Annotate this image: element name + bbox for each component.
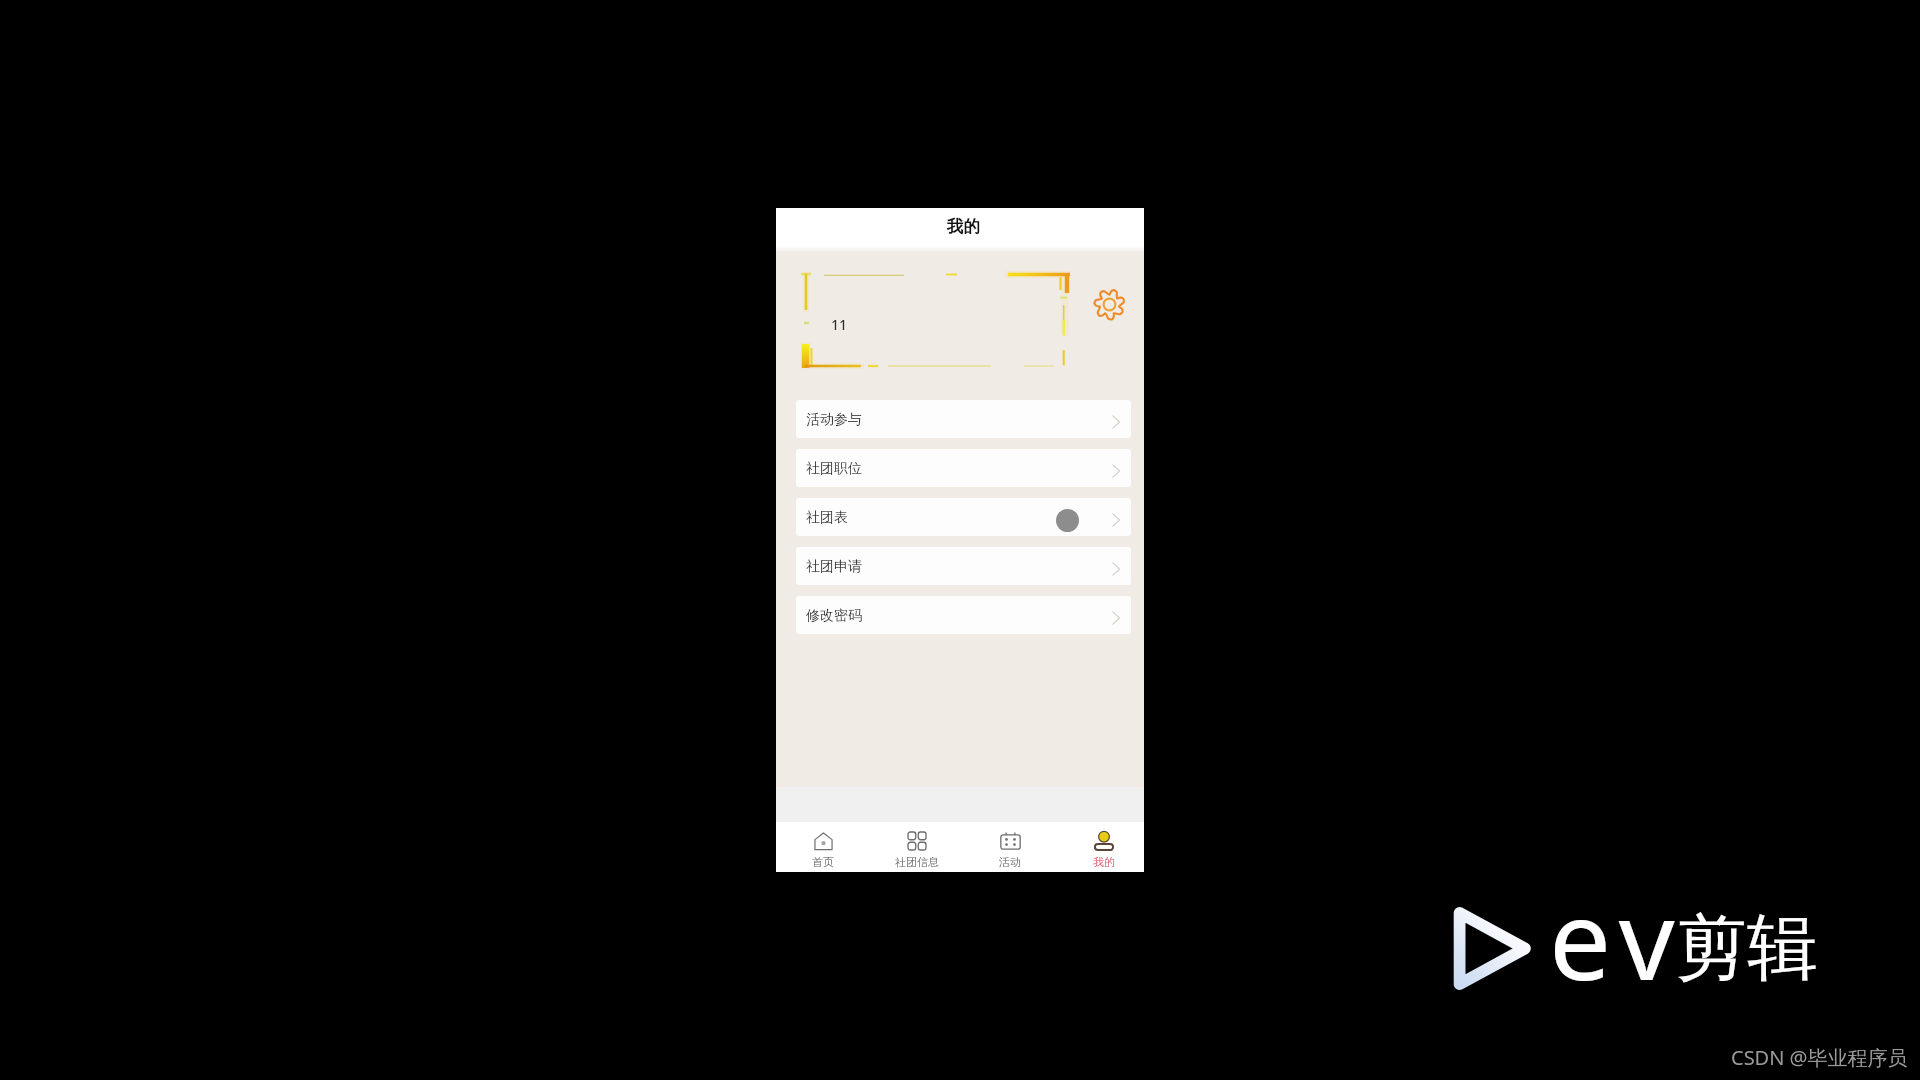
button[interactable]: 社团申请	[796, 547, 1131, 585]
button[interactable]: 修改密码	[796, 596, 1131, 634]
staticText: 剪辑	[1676, 904, 1818, 993]
button[interactable]: 活动	[980, 822, 1040, 872]
staticText: ev	[1549, 862, 1685, 1012]
staticText: 社团申请	[806, 558, 862, 576]
button[interactable]: 社团表	[796, 498, 1131, 536]
staticText: 修改密码	[806, 607, 862, 625]
staticText: 我的	[947, 216, 980, 237]
staticText: 社团职位	[806, 460, 862, 478]
button[interactable]: 社团信息	[887, 822, 947, 872]
staticText: 活动	[999, 855, 1021, 869]
button[interactable]: 设置	[1091, 286, 1127, 322]
staticText: 首页	[812, 855, 834, 869]
button[interactable]: 活动参与	[796, 400, 1131, 438]
staticText: 11	[831, 315, 848, 334]
staticText: 我的	[1093, 855, 1115, 869]
staticText: 社团信息	[895, 855, 939, 869]
button[interactable]: 首页	[793, 822, 853, 872]
staticText: 活动参与	[806, 411, 862, 429]
button[interactable]: 社团职位	[796, 449, 1131, 487]
button[interactable]: 我的	[1074, 822, 1134, 872]
staticText: 社团表	[806, 509, 848, 527]
staticText: CSDN @毕业程序员	[1731, 1044, 1908, 1071]
